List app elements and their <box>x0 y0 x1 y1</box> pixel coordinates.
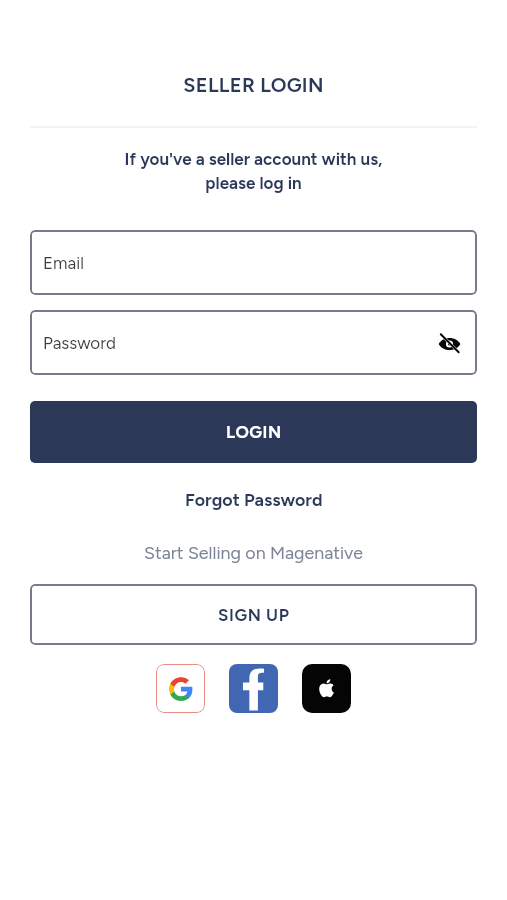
button[interactable]: Email <box>30 230 477 295</box>
button[interactable]: SIGN UP <box>30 584 477 645</box>
staticText: Email <box>43 253 84 273</box>
button[interactable]: Sign in with Apple <box>302 664 351 713</box>
staticText: If you've a seller account with us, plea… <box>0 149 507 193</box>
button[interactable]: LOGIN <box>30 401 477 463</box>
button[interactable]: Sign in with Facebook <box>229 664 278 713</box>
staticText: Password <box>43 333 116 353</box>
staticText: LOGIN <box>226 422 282 442</box>
staticText: Start Selling on Magenative <box>0 542 507 563</box>
button[interactable]: Sign in with Google <box>156 664 205 713</box>
button[interactable]: Forgot Password <box>179 486 329 513</box>
button[interactable]: Show password <box>433 327 465 359</box>
staticText: SIGN UP <box>218 605 290 625</box>
staticText: SELLER LOGIN <box>0 73 507 97</box>
staticText: Forgot Password <box>185 489 323 510</box>
button[interactable]: Password <box>30 310 477 375</box>
